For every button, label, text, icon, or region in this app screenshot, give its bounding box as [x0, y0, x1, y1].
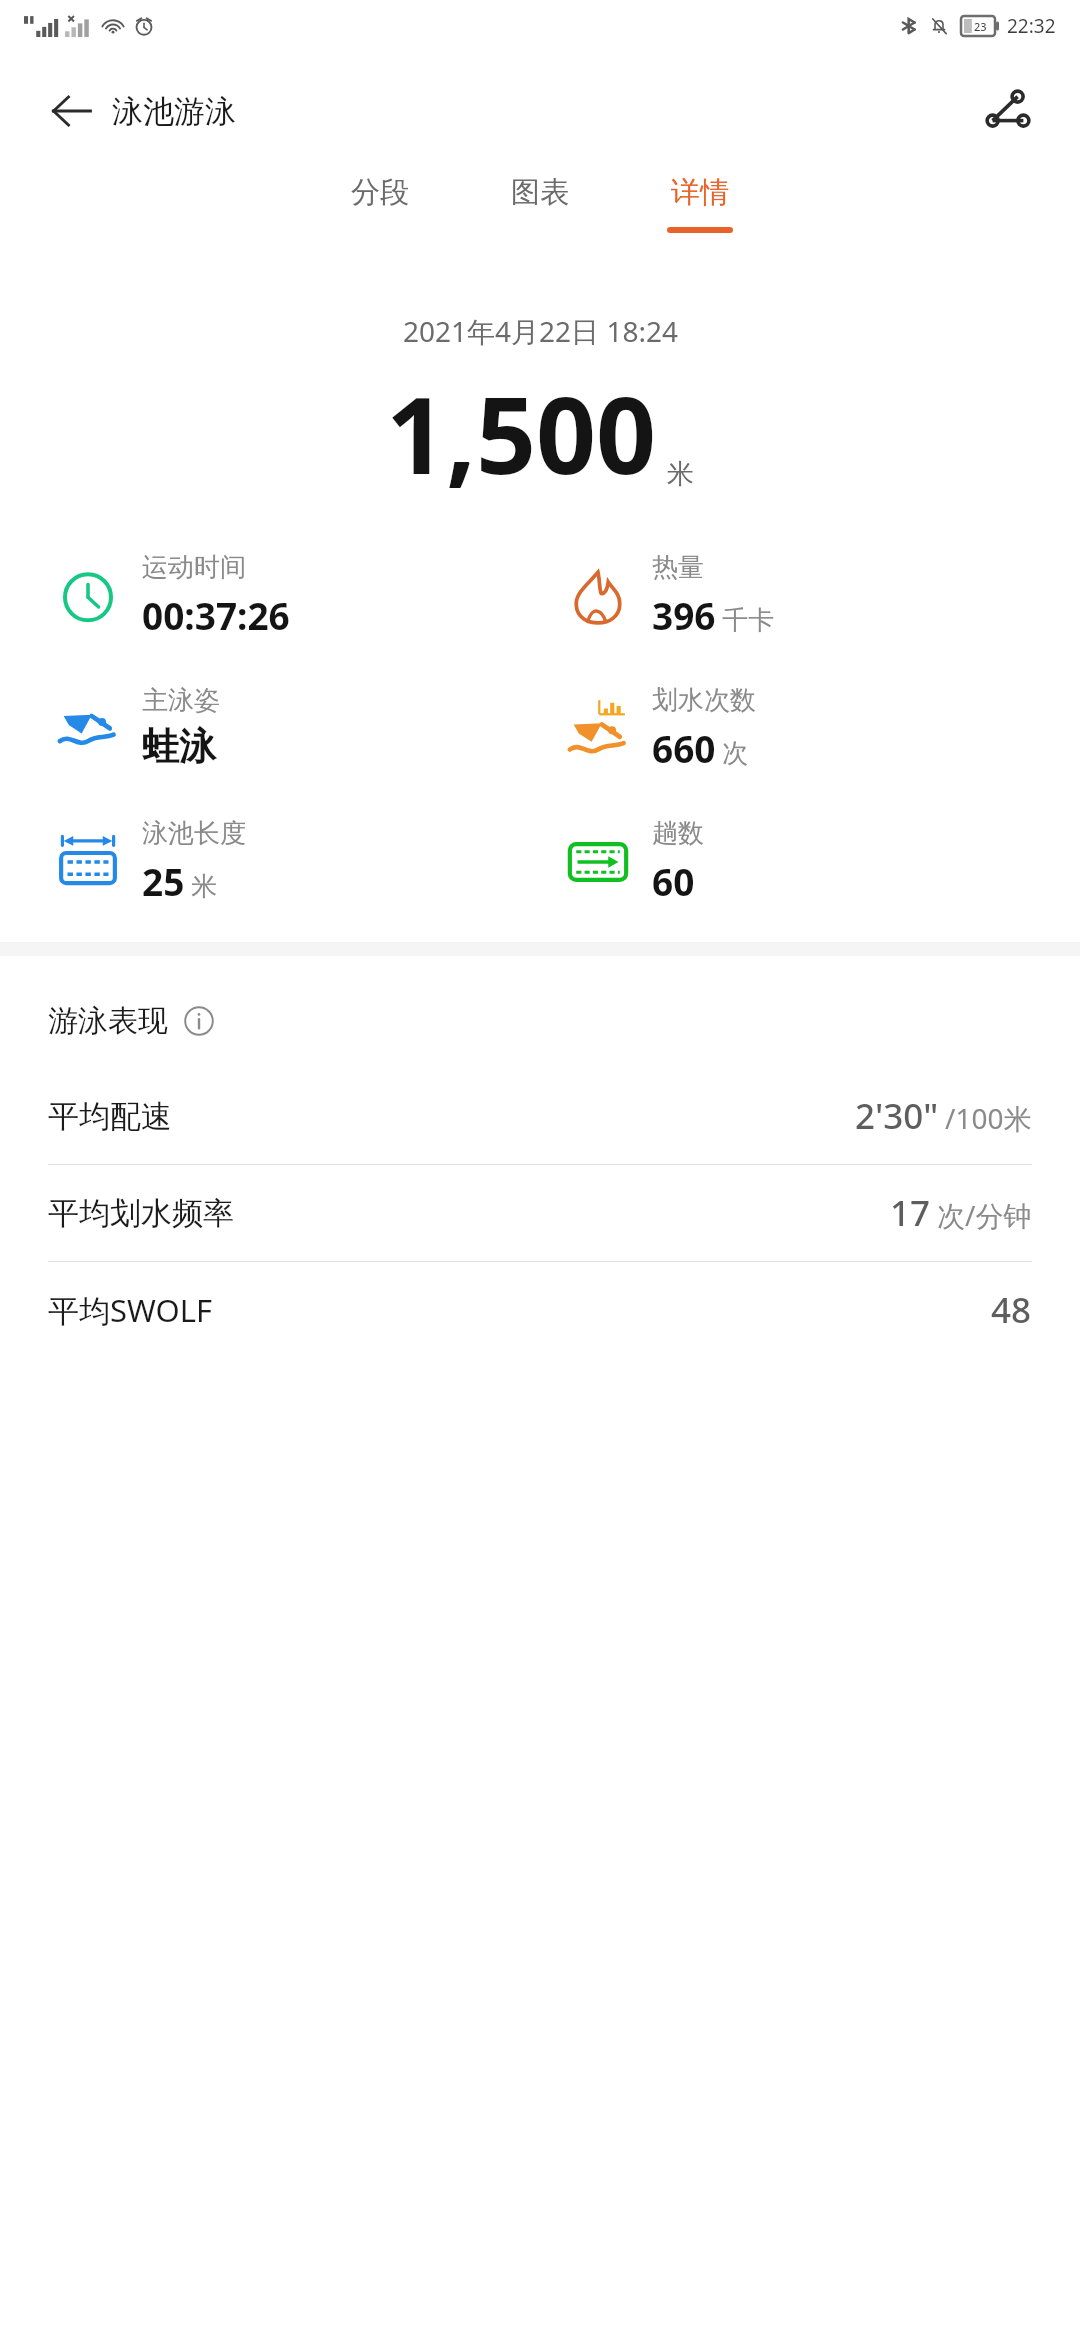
staticText: 22:32 — [1007, 13, 1056, 39]
button[interactable]: 平均配速 — [0, 1068, 1080, 1165]
staticText: 米 — [667, 457, 694, 491]
staticText: 热量 — [652, 551, 704, 584]
staticText: 平均划水频率 — [48, 1194, 234, 1233]
staticText: 详情 — [671, 174, 729, 211]
staticText: 00:37:26 — [142, 590, 290, 640]
staticText: 2'30" — [855, 1092, 939, 1140]
staticText: 图表 — [511, 174, 569, 211]
button[interactable]: 平均SWOLF — [0, 1262, 1080, 1358]
staticText: 2021年4月22日 18:24 — [403, 312, 678, 350]
staticText: 泳池游泳 — [112, 92, 236, 131]
button[interactable]: Info — [182, 1004, 216, 1038]
staticText: 23 — [974, 19, 987, 34]
staticText: 1,500 — [386, 362, 657, 505]
staticText: 运动时间 — [142, 551, 246, 584]
staticText: 千卡 — [722, 604, 774, 637]
staticText: 泳池长度 — [142, 817, 246, 850]
button[interactable]: 热量 — [566, 551, 774, 640]
button[interactable]: 运动时间 — [56, 551, 290, 640]
button[interactable]: 划水次数 — [566, 684, 756, 773]
staticText: 396 — [652, 590, 716, 640]
staticText: 平均SWOLF — [48, 1289, 213, 1331]
button[interactable]: Share — [976, 79, 1040, 143]
staticText: 次/分钟 — [937, 1196, 1032, 1234]
button[interactable]: 图表 — [488, 170, 592, 233]
staticText: 分段 — [351, 174, 409, 211]
staticText: 划水次数 — [652, 684, 756, 717]
staticText: 米 — [191, 870, 217, 903]
staticText: 主泳姿 — [142, 684, 220, 717]
staticText: 48 — [991, 1286, 1032, 1334]
staticText: 17 — [890, 1189, 931, 1237]
button[interactable]: 分段 — [328, 170, 432, 233]
staticText: 60 — [652, 856, 695, 906]
button[interactable]: 主泳姿 — [56, 684, 220, 770]
staticText: 660 — [652, 723, 716, 773]
staticText: /100米 — [945, 1099, 1032, 1137]
button[interactable]: 详情 — [648, 170, 752, 233]
button[interactable]: Back — [44, 83, 100, 139]
staticText: 蛙泳 — [142, 723, 216, 770]
staticText: 趟数 — [652, 817, 704, 850]
button[interactable]: 泳池长度 — [56, 817, 246, 906]
staticText: 25 — [142, 856, 185, 906]
staticText: 平均配速 — [48, 1097, 172, 1136]
staticText: 次 — [722, 737, 748, 770]
staticText: 游泳表现 — [48, 1002, 168, 1040]
button[interactable]: 趟数 — [566, 817, 704, 906]
button[interactable]: 平均划水频率 — [0, 1165, 1080, 1262]
